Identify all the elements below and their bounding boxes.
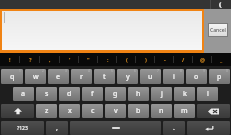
staticText: ': [69, 56, 71, 63]
staticText: @: [200, 56, 205, 63]
button[interactable]: p: [209, 69, 230, 84]
staticText: Cancel: [210, 27, 226, 34]
button[interactable]: l: [197, 87, 218, 101]
other: Do not disturb: [219, 2, 224, 8]
staticText: 7: [157, 69, 159, 73]
staticText: v: [114, 106, 118, 116]
staticText: ,: [49, 56, 51, 63]
staticText: ?: [29, 56, 32, 63]
staticText: r: [80, 72, 83, 82]
staticText: d: [67, 89, 72, 99]
staticText: -: [164, 56, 166, 63]
staticText: x: [68, 106, 72, 116]
staticText: ,: [56, 123, 58, 133]
staticText: t: [103, 72, 106, 82]
button[interactable]: y: [117, 69, 138, 84]
staticText: i: [173, 72, 175, 82]
button[interactable]: n: [151, 104, 172, 118]
button[interactable]: q: [1, 69, 23, 84]
button[interactable]: o: [186, 69, 207, 84]
button[interactable]: c: [82, 104, 103, 118]
staticText: g: [113, 89, 118, 99]
staticText: q: [10, 72, 15, 82]
staticText: 8: [180, 69, 182, 73]
button[interactable]: d: [59, 87, 80, 101]
staticText: p: [217, 72, 222, 82]
staticText: 1: [19, 69, 21, 73]
button[interactable]: t: [94, 69, 115, 84]
staticText: s: [45, 89, 49, 99]
button[interactable]: ?: [20, 53, 40, 66]
button[interactable]: Shift: [1, 104, 34, 118]
staticText: !: [9, 56, 11, 63]
staticText: 3: [65, 69, 67, 73]
button[interactable]: k: [174, 87, 195, 101]
staticText: j: [161, 89, 163, 99]
staticText: 2: [42, 69, 44, 73]
button[interactable]: b: [128, 104, 149, 118]
staticText: /: [182, 56, 185, 63]
button[interactable]: /: [174, 53, 193, 66]
staticText: c: [91, 106, 95, 116]
button[interactable]: x: [59, 104, 80, 118]
button[interactable]: [2, 11, 202, 50]
staticText: n: [159, 106, 164, 116]
button[interactable]: j: [151, 87, 172, 101]
button[interactable]: _: [212, 53, 231, 66]
button[interactable]: @: [193, 53, 212, 66]
staticText: 5: [111, 69, 113, 73]
staticText: 4: [88, 69, 90, 73]
staticText: f: [91, 89, 94, 99]
button[interactable]: .: [163, 121, 185, 135]
button[interactable]: !: [0, 53, 20, 66]
staticText: 6: [134, 69, 136, 73]
button[interactable]: (: [117, 53, 136, 66]
button[interactable]: h: [128, 87, 149, 101]
staticText: .: [173, 123, 175, 133]
button[interactable]: ,: [46, 121, 68, 135]
staticText: :: [107, 56, 109, 63]
staticText: m: [181, 106, 188, 116]
staticText: y: [126, 72, 130, 82]
staticText: ?123: [17, 125, 28, 132]
button[interactable]: ?123: [1, 121, 44, 135]
button[interactable]: :: [98, 53, 117, 66]
button[interactable]: u: [140, 69, 161, 84]
staticText: _: [220, 56, 223, 63]
button[interactable]: s: [36, 87, 57, 101]
staticText: 0: [226, 69, 228, 73]
staticText: k: [183, 89, 187, 99]
button[interactable]: v: [105, 104, 126, 118]
button[interactable]: Cancel: [209, 24, 227, 36]
staticText: ): [145, 56, 147, 63]
button[interactable]: Space: [70, 121, 161, 135]
button[interactable]: -: [155, 53, 174, 66]
button[interactable]: Backspace: [197, 104, 230, 118]
staticText: (: [126, 56, 128, 63]
staticText: l: [207, 89, 209, 99]
button[interactable]: ): [136, 53, 155, 66]
staticText: e: [56, 72, 61, 82]
button[interactable]: e: [48, 69, 69, 84]
button[interactable]: i: [163, 69, 184, 84]
button[interactable]: m: [174, 104, 195, 118]
staticText: o: [194, 72, 199, 82]
staticText: h: [136, 89, 141, 99]
button[interactable]: a: [13, 87, 34, 101]
button[interactable]: ": [79, 53, 98, 66]
staticText: 9: [203, 69, 205, 73]
button[interactable]: Enter: [187, 121, 230, 135]
button[interactable]: g: [105, 87, 126, 101]
button[interactable]: ': [60, 53, 79, 66]
button[interactable]: f: [82, 87, 103, 101]
button[interactable]: w: [25, 69, 46, 84]
staticText: ": [87, 56, 90, 63]
staticText: z: [45, 106, 49, 116]
button[interactable]: ,: [40, 53, 60, 66]
button[interactable]: r: [71, 69, 92, 84]
button[interactable]: z: [36, 104, 57, 118]
staticText: b: [136, 106, 141, 116]
staticText: w: [33, 72, 39, 82]
staticText: a: [21, 89, 26, 99]
staticText: u: [148, 72, 153, 82]
